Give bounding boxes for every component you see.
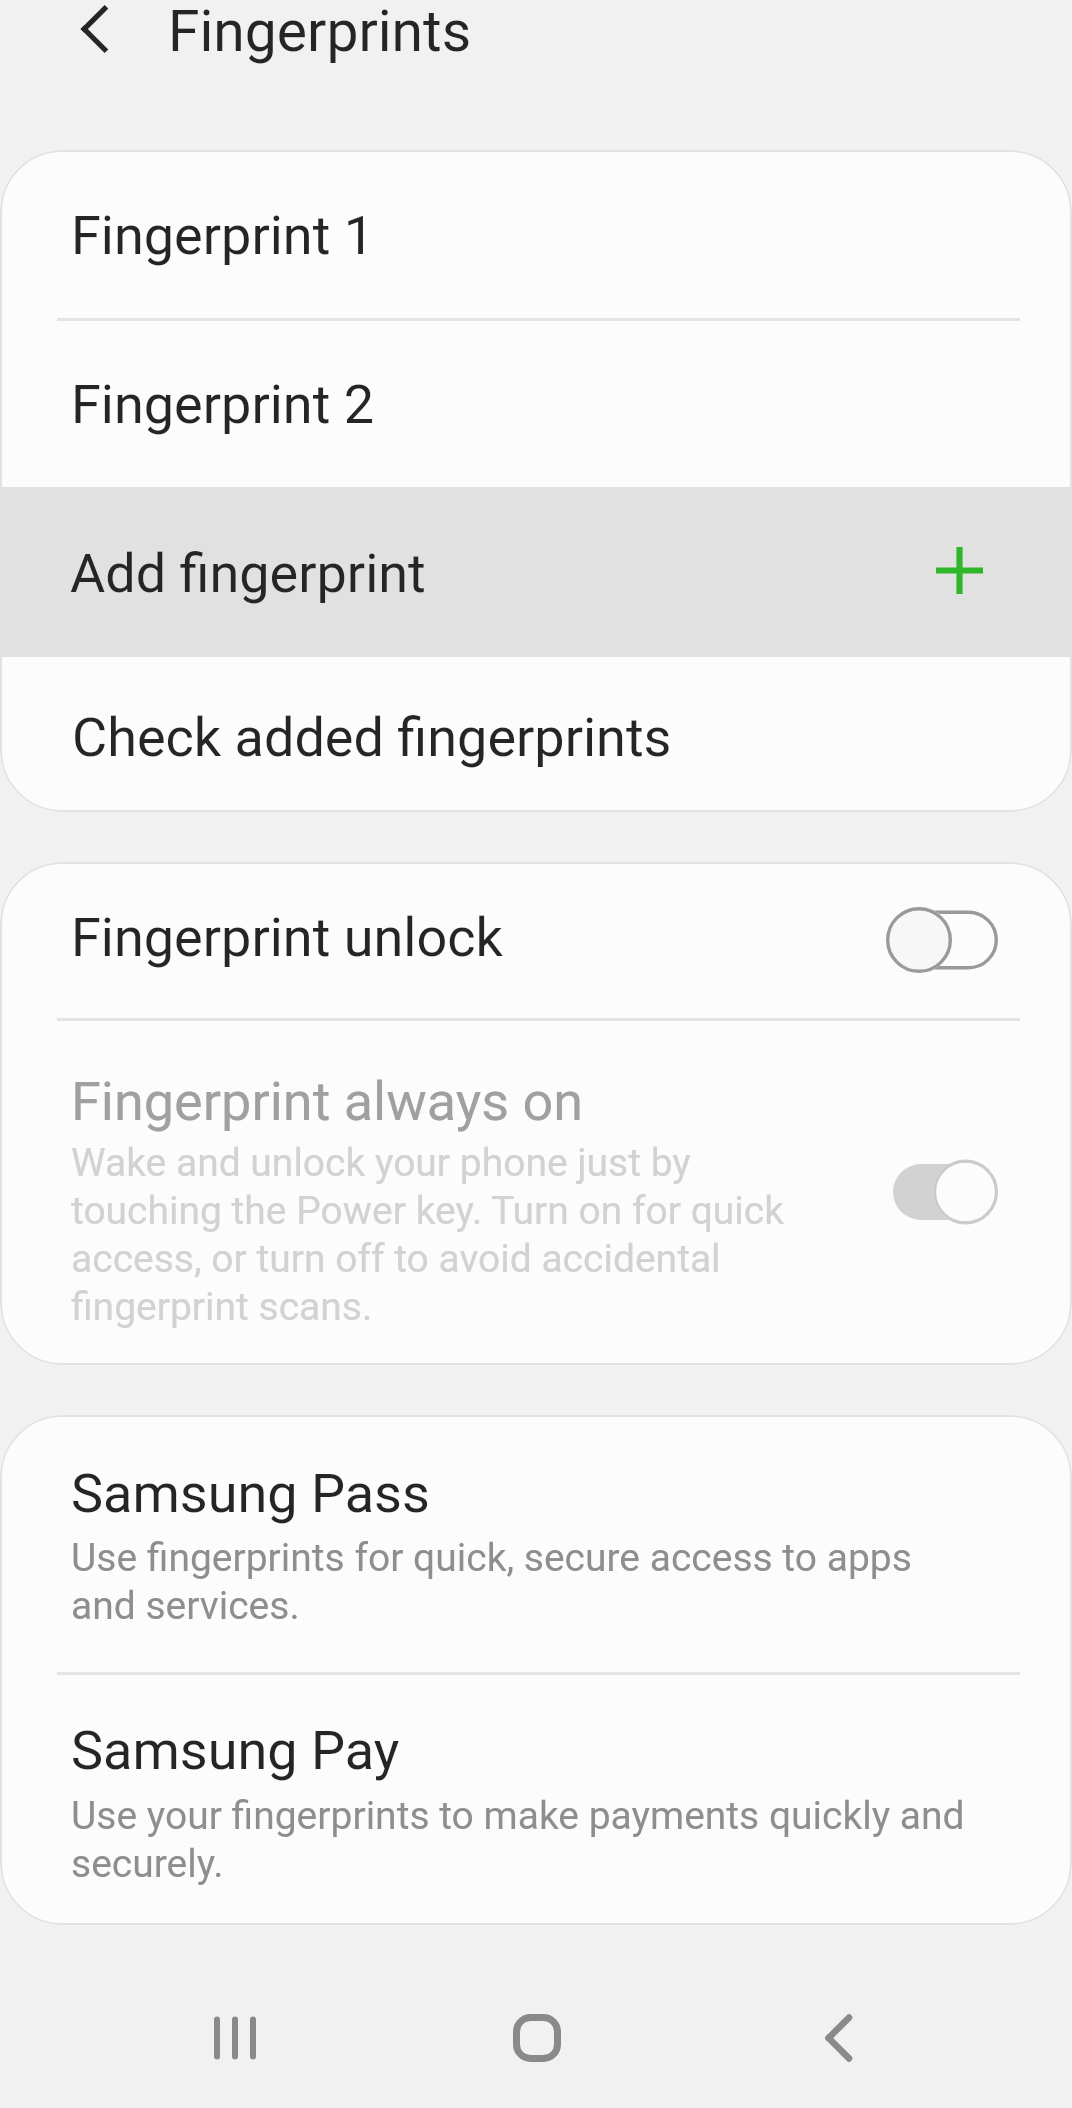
button[interactable]: Home: [477, 1979, 597, 2097]
staticText: Fingerprints: [168, 0, 472, 65]
staticText: Add fingerprint: [70, 542, 426, 605]
staticText: Samsung Pass: [71, 1462, 430, 1525]
button[interactable]: Fingerprint 1: [0, 150, 1072, 319]
button[interactable]: Fingerprint always on, on: [886, 1152, 1002, 1232]
button[interactable]: Add fingerprint: [0, 487, 1072, 657]
button[interactable]: Fingerprint always on: [0, 1021, 1072, 1365]
staticText: Fingerprint 1: [71, 204, 375, 267]
other: Add fingerprint: [936, 547, 983, 594]
button[interactable]: Check added fingerprints: [0, 657, 1072, 812]
button[interactable]: Samsung Pay: [0, 1675, 1072, 1925]
staticText: Fingerprint unlock: [71, 906, 503, 969]
staticText: Use your fingerprints to make payments q…: [71, 1793, 965, 1887]
button[interactable]: Recent apps: [175, 1979, 295, 2097]
button[interactable]: Fingerprint unlock, off: [886, 900, 1002, 980]
staticText: Use fingerprints for quick, secure acces…: [71, 1535, 912, 1629]
button[interactable]: Samsung Pass: [0, 1415, 1072, 1672]
staticText: Fingerprint 2: [71, 373, 375, 436]
button[interactable]: Fingerprint 2: [0, 321, 1072, 487]
button[interactable]: Fingerprint unlock: [0, 862, 1072, 1018]
staticText: Fingerprint always on: [71, 1070, 584, 1133]
button[interactable]: Back: [778, 1979, 898, 2097]
staticText: Wake and unlock your phone just by touch…: [71, 1140, 784, 1330]
staticText: Samsung Pay: [71, 1719, 400, 1782]
staticText: Check added fingerprints: [72, 706, 672, 769]
button[interactable]: Navigate up: [62, 0, 124, 58]
